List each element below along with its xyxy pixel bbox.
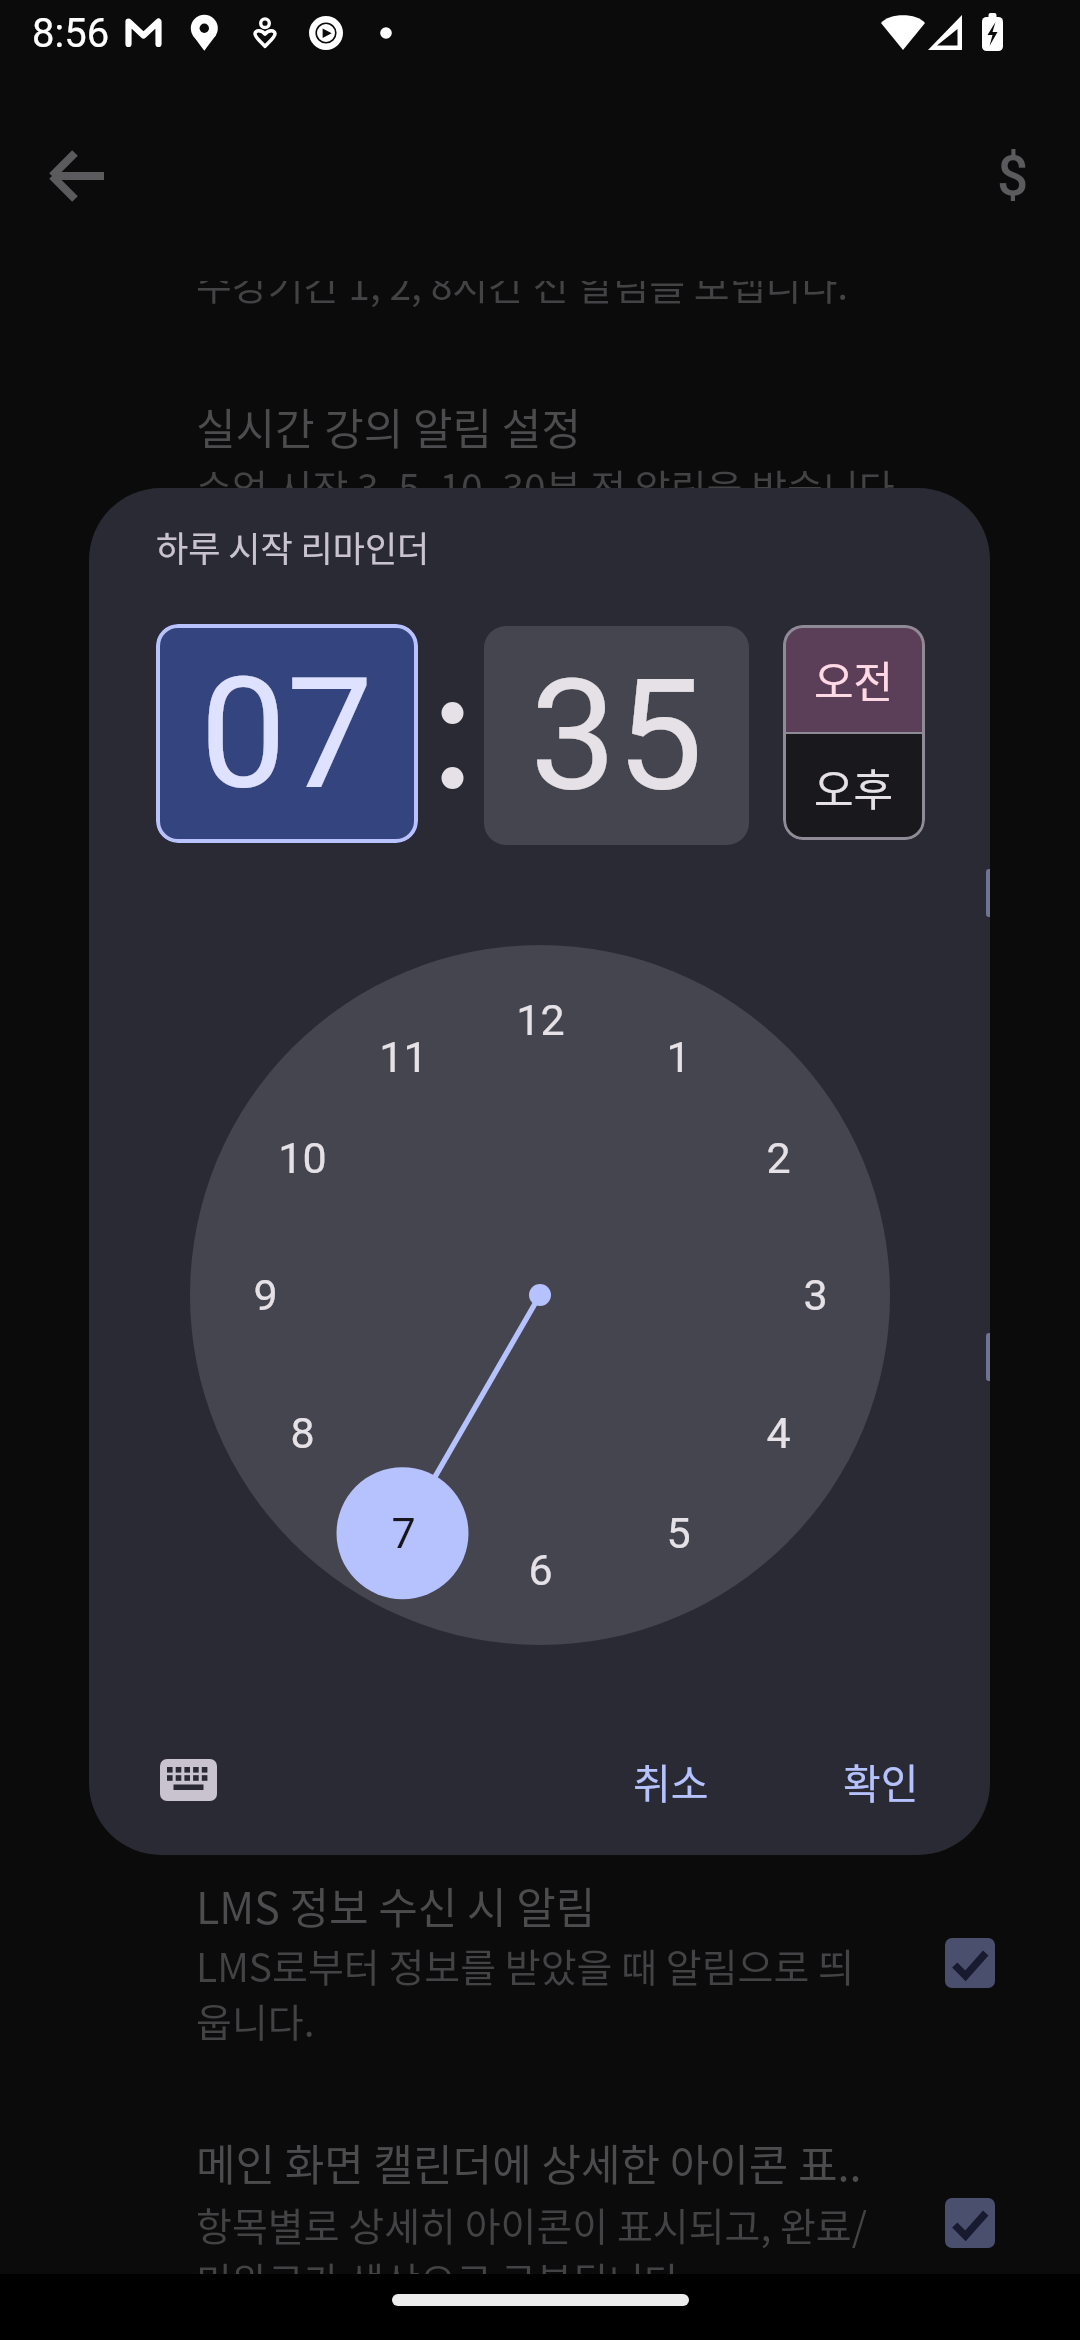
staticText: 35	[530, 646, 704, 826]
button[interactable]: 오전	[783, 625, 925, 732]
button[interactable]: 오후	[783, 734, 925, 840]
staticText: 12	[516, 995, 565, 1045]
staticText: 메인 화면 캘린더에 상세한 아이콘 표..	[196, 2131, 862, 2193]
button[interactable]: Payments	[965, 128, 1061, 224]
staticText: LMS 정보 수신 시 알림	[196, 1874, 596, 1936]
staticText: 오전	[814, 648, 894, 710]
staticText: 수업 시작 3, 5, 10, 30분 전 알림을 받습니다.	[196, 458, 906, 514]
staticText: 7	[391, 1508, 416, 1558]
staticText: 4	[766, 1408, 791, 1458]
staticText: 9	[253, 1270, 278, 1320]
staticText: 1	[666, 1032, 691, 1082]
button[interactable]: Toggle setting	[945, 1938, 995, 1988]
staticText: 취소	[633, 1751, 709, 1810]
staticText: 8	[290, 1408, 315, 1458]
staticText: 10	[278, 1133, 327, 1183]
staticText: 오후	[814, 756, 894, 818]
staticText: 하루 시작 리마인더	[156, 521, 430, 572]
staticText: 8:56	[32, 10, 110, 57]
button[interactable]: Back	[30, 128, 126, 224]
staticText: 2	[766, 1133, 791, 1183]
staticText: 3	[803, 1270, 828, 1320]
button[interactable]: 1	[190, 945, 890, 1645]
staticText: 11	[379, 1032, 428, 1082]
button[interactable]: 취소	[590, 1741, 752, 1819]
button[interactable]: 확인	[800, 1741, 962, 1819]
staticText: 07	[200, 644, 374, 824]
staticText: 5	[666, 1508, 691, 1558]
staticText: 확인	[843, 1751, 919, 1810]
staticText: LMS로부터 정보를 받았을 때 알림으로 띄 웁니다.	[196, 1937, 854, 2048]
button[interactable]: Switch to text input	[148, 1744, 228, 1816]
button[interactable]: Toggle setting	[945, 2198, 995, 2248]
staticText: 수강기간 1, 2, 8시간 전 알림을 보냅니다.	[196, 255, 849, 311]
button[interactable]: 07	[156, 624, 418, 843]
staticText: 실시간 강의 알림 설정	[196, 395, 581, 457]
button[interactable]: 35	[484, 626, 749, 845]
staticText: 항목별로 상세히 아이콘이 표시되고, 완료/ 미완료가 색상으로 구분됩니다.	[196, 2196, 868, 2307]
staticText: $	[997, 144, 1029, 208]
staticText: 6	[528, 1545, 553, 1595]
